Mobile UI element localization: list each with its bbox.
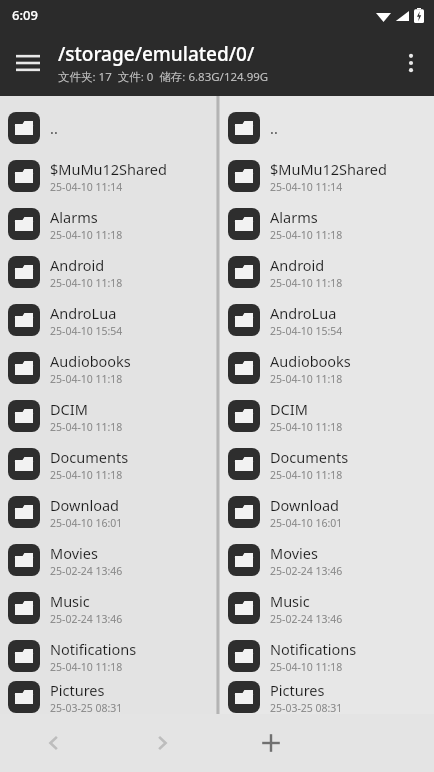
staticText: 文件夹: 17 文件: 0 储存: 6.83G/124.99G: [58, 69, 269, 85]
staticText: Audiobooks: [270, 351, 351, 371]
staticText: 25-04-10 11:18: [50, 468, 123, 482]
button[interactable]: Back: [0, 714, 108, 772]
button[interactable]: Alarms: [220, 200, 434, 248]
staticText: 25-04-10 15:54: [50, 324, 123, 338]
staticText: Android: [270, 255, 325, 275]
staticText: 25-04-10 11:18: [50, 372, 123, 386]
staticText: AndroLua: [270, 303, 337, 323]
button[interactable]: Forward: [108, 714, 216, 772]
button[interactable]: DCIM: [0, 392, 216, 440]
button[interactable]: Documents: [220, 440, 434, 488]
staticText: 25-03-25 08:31: [270, 701, 343, 714]
button[interactable]: Download: [0, 488, 216, 536]
staticText: Documents: [50, 447, 129, 467]
staticText: Android: [50, 255, 105, 275]
staticText: 25-04-10 16:01: [50, 516, 123, 530]
staticText: Music: [270, 591, 310, 611]
button[interactable]: Music: [220, 584, 434, 632]
button[interactable]: Pictures: [220, 680, 434, 714]
staticText: 25-04-10 11:18: [270, 228, 343, 242]
staticText: Documents: [270, 447, 349, 467]
staticText: DCIM: [50, 399, 88, 419]
staticText: 25-04-10 11:18: [270, 468, 343, 482]
button[interactable]: DCIM: [220, 392, 434, 440]
staticText: 25-04-10 11:18: [270, 660, 343, 674]
button[interactable]: Movies: [0, 536, 216, 584]
button[interactable]: Audiobooks: [220, 344, 434, 392]
staticText: 25-04-10 11:18: [50, 228, 123, 242]
button[interactable]: Notifications: [220, 632, 434, 680]
staticText: $MuMu12Shared: [270, 159, 387, 179]
staticText: Movies: [270, 543, 318, 563]
staticText: AndroLua: [50, 303, 117, 323]
staticText: Download: [50, 495, 119, 515]
staticText: 25-04-10 11:14: [50, 180, 123, 194]
staticText: Audiobooks: [50, 351, 131, 371]
button[interactable]: Pictures: [0, 680, 216, 714]
staticText: 25-04-10 11:18: [270, 276, 343, 290]
staticText: ..: [270, 118, 278, 138]
button[interactable]: Android: [0, 248, 216, 296]
button[interactable]: Menu: [0, 35, 56, 91]
staticText: Download: [270, 495, 339, 515]
staticText: 25-04-10 16:01: [270, 516, 343, 530]
button[interactable]: Alarms: [0, 200, 216, 248]
staticText: ..: [50, 118, 58, 138]
staticText: Alarms: [270, 207, 318, 227]
button[interactable]: Movies: [220, 536, 434, 584]
button[interactable]: Music: [0, 584, 216, 632]
button[interactable]: Documents: [0, 440, 216, 488]
staticText: 25-02-24 13:46: [50, 612, 123, 626]
staticText: 6:09: [12, 6, 38, 24]
staticText: Pictures: [270, 680, 325, 700]
staticText: Notifications: [50, 639, 137, 659]
button[interactable]: Android: [220, 248, 434, 296]
staticText: 25-03-25 08:31: [50, 701, 123, 714]
staticText: 25-02-24 13:46: [50, 564, 123, 578]
staticText: DCIM: [270, 399, 308, 419]
staticText: 25-04-10 11:18: [270, 372, 343, 386]
button[interactable]: ..: [220, 104, 434, 152]
button[interactable]: AndroLua: [0, 296, 216, 344]
button[interactable]: $MuMu12Shared: [220, 152, 434, 200]
button[interactable]: ..: [0, 104, 216, 152]
button[interactable]: Notifications: [0, 632, 216, 680]
staticText: 25-02-24 13:46: [270, 564, 343, 578]
staticText: 25-04-10 11:18: [50, 420, 123, 434]
staticText: $MuMu12Shared: [50, 159, 167, 179]
button[interactable]: Add: [216, 714, 325, 772]
button[interactable]: AndroLua: [220, 296, 434, 344]
staticText: 25-04-10 11:18: [50, 276, 123, 290]
staticText: 25-04-10 15:54: [270, 324, 343, 338]
staticText: /storage/emulated/0/: [58, 41, 255, 67]
staticText: Movies: [50, 543, 98, 563]
staticText: Notifications: [270, 639, 357, 659]
staticText: Pictures: [50, 680, 105, 700]
staticText: 25-04-10 11:18: [270, 420, 343, 434]
staticText: 25-04-10 11:18: [50, 660, 123, 674]
staticText: Alarms: [50, 207, 98, 227]
button[interactable]: More options: [388, 40, 434, 86]
staticText: 25-02-24 13:46: [270, 612, 343, 626]
staticText: Music: [50, 591, 90, 611]
button[interactable]: $MuMu12Shared: [0, 152, 216, 200]
staticText: 25-04-10 11:14: [270, 180, 343, 194]
button[interactable]: Download: [220, 488, 434, 536]
button[interactable]: Audiobooks: [0, 344, 216, 392]
